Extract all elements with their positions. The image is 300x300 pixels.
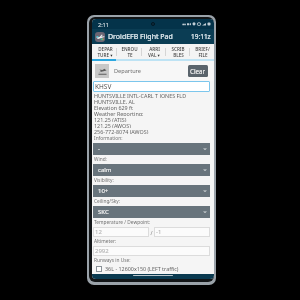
- button[interactable]: Home gesture handle: [133, 275, 173, 276]
- button[interactable]: 2992: [93, 246, 210, 256]
- staticText: 256-772-8074 (AWOS): [94, 128, 149, 134]
- staticText: DEPAR: [98, 46, 113, 52]
- button[interactable]: 12: [93, 227, 149, 237]
- button[interactable]: SCRIB: [166, 44, 190, 59]
- staticText: BRIEF/: [195, 46, 210, 52]
- staticText: 121.25 (ATIS): [94, 116, 127, 122]
- staticText: KHSV: [95, 82, 112, 91]
- staticText: Visibility:: [94, 177, 114, 184]
- staticText: -: [98, 145, 100, 153]
- staticText: VAL ▾: [148, 52, 160, 58]
- staticText: HUNTSVILLE, AL: [94, 98, 135, 104]
- staticText: BLES: [173, 52, 184, 58]
- button[interactable]: BRIEF/: [190, 44, 214, 59]
- staticText: Weather Reporting:: [94, 110, 144, 116]
- staticText: Ceiling/Sky:: [94, 198, 121, 205]
- staticText: HUNTSVILLE INTL-CARL T JONES FLD: [94, 92, 187, 98]
- staticText: FILE: [198, 52, 208, 58]
- staticText: 121.25 (AWOS): [94, 122, 131, 128]
- button[interactable]: App icon: [95, 32, 105, 42]
- button[interactable]: 10+: [93, 185, 210, 197]
- button[interactable]: -: [93, 143, 210, 155]
- staticText: 36L - 12600x150 (LEFT traffic): [105, 265, 179, 272]
- staticText: SCRIB: [171, 46, 185, 52]
- staticText: Departure: [114, 67, 141, 75]
- button[interactable]: calm: [93, 164, 210, 176]
- staticText: Wind:: [94, 156, 107, 163]
- staticText: ARRI: [149, 46, 160, 52]
- button[interactable]: SKC: [93, 206, 210, 218]
- staticText: Altimeter:: [94, 238, 117, 245]
- staticText: TE: [127, 52, 133, 58]
- button[interactable]: KHSV: [93, 81, 210, 92]
- button[interactable]: ENROU: [117, 44, 142, 59]
- staticText: 12: [95, 228, 102, 236]
- staticText: 19:11z: [191, 32, 211, 41]
- button[interactable]: 36L - 12600x150 (LEFT traffic): [96, 265, 210, 272]
- staticText: 2992: [95, 247, 109, 255]
- staticText: ENROU: [121, 46, 138, 52]
- button[interactable]: Clear: [188, 65, 208, 77]
- staticText: Information:: [94, 135, 123, 142]
- staticText: TURE ▾: [97, 52, 113, 58]
- button[interactable]: DEPAR: [92, 44, 117, 59]
- button[interactable]: -1: [154, 227, 210, 237]
- staticText: /: [149, 229, 154, 236]
- staticText: 10+: [98, 187, 109, 195]
- staticText: SKC: [98, 208, 109, 216]
- staticText: DroidEFB Flight Pad: [108, 32, 173, 42]
- staticText: Temperature / Dewpoint:: [94, 219, 151, 226]
- staticText: Elevation 629 ft: [94, 104, 133, 110]
- staticText: calm: [98, 166, 112, 174]
- staticText: Runways in Use:: [94, 257, 131, 264]
- staticText: Clear: [190, 67, 206, 75]
- button[interactable]: ARRI: [142, 44, 166, 59]
- staticText: 2:11: [98, 21, 109, 28]
- staticText: -1: [156, 228, 162, 236]
